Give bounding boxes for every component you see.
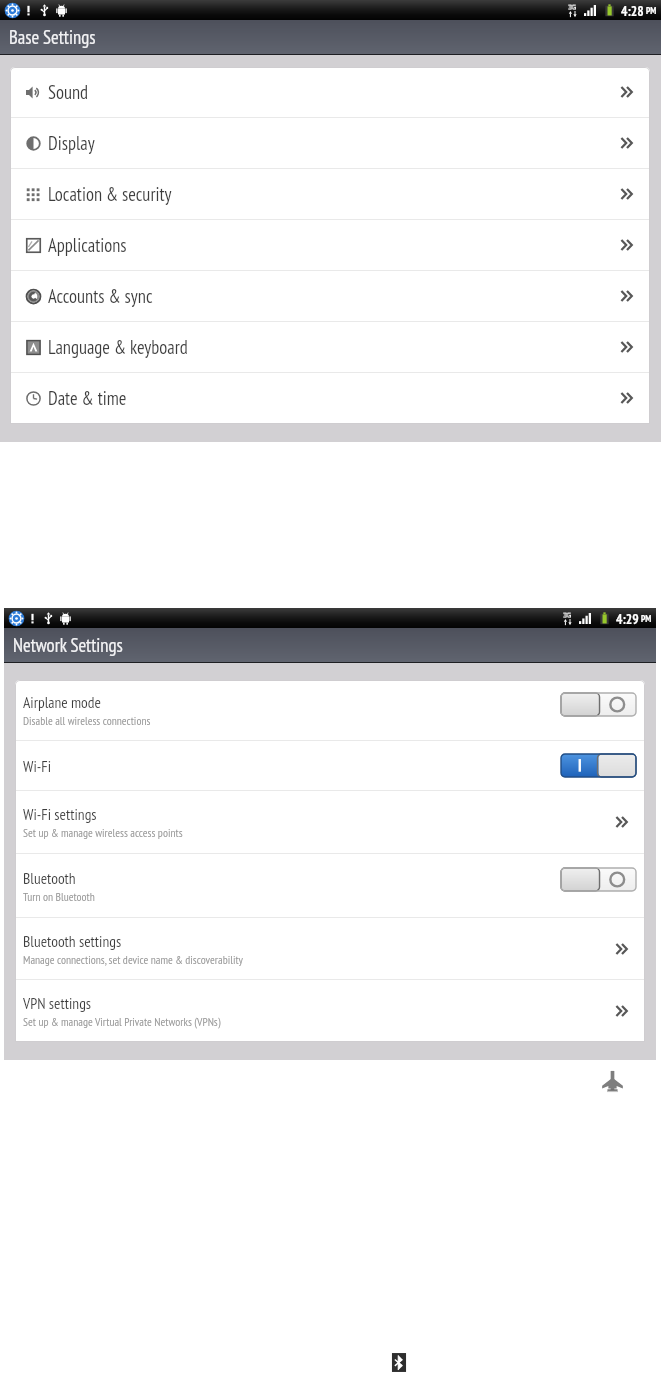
button[interactable]: Applications <box>10 220 650 270</box>
staticText: Set up & manage Virtual Private Networks… <box>23 1014 221 1029</box>
button[interactable]: Date & time <box>10 373 650 423</box>
staticText: 4:29 <box>616 610 639 627</box>
other: Airplane mode <box>601 1070 624 1093</box>
button[interactable]: Toggle off <box>561 693 636 716</box>
staticText: Date & time <box>48 386 127 410</box>
staticText: Wi-Fi <box>23 756 52 776</box>
staticText: Network Settings <box>13 633 123 657</box>
staticText: Applications <box>48 233 127 257</box>
staticText: VPN settings <box>23 993 92 1013</box>
staticText: Location & security <box>48 182 172 206</box>
staticText: Language & keyboard <box>48 335 188 359</box>
staticText: Display <box>48 131 95 155</box>
other: Bluetooth <box>391 1352 407 1373</box>
staticText: Accounts & sync <box>48 284 153 308</box>
button[interactable]: Accounts & sync <box>10 271 650 321</box>
staticText: Manage connections, set device name & di… <box>23 952 243 967</box>
button[interactable]: Language & keyboard <box>10 322 650 372</box>
button[interactable]: Wi-Fi <box>15 741 645 790</box>
staticText: Wi-Fi settings <box>23 804 97 824</box>
staticText: Turn on Bluetooth <box>23 889 95 904</box>
button[interactable]: VPN settings <box>15 980 645 1041</box>
staticText: Sound <box>48 80 89 104</box>
staticText: PM <box>646 5 657 17</box>
button[interactable]: Wi-Fi settings <box>15 791 645 853</box>
staticText: PM <box>641 613 652 625</box>
staticText: Airplane mode <box>23 692 101 712</box>
button[interactable]: Sound <box>10 67 650 117</box>
button[interactable]: Airplane mode <box>15 680 645 740</box>
staticText: Disable all wireless connections <box>23 713 151 728</box>
button[interactable]: Display <box>10 118 650 168</box>
staticText: Bluetooth settings <box>23 931 122 951</box>
button[interactable]: Bluetooth settings <box>15 918 645 979</box>
button[interactable]: Location & security <box>10 169 650 219</box>
staticText: Set up & manage wireless access points <box>23 825 183 840</box>
button[interactable]: Bluetooth <box>15 854 645 917</box>
button[interactable]: Toggle off <box>561 868 636 891</box>
staticText: Base Settings <box>9 25 96 49</box>
staticText: 4:28 <box>621 2 644 19</box>
staticText: Bluetooth <box>23 868 76 888</box>
button[interactable]: Toggle on <box>561 754 636 777</box>
